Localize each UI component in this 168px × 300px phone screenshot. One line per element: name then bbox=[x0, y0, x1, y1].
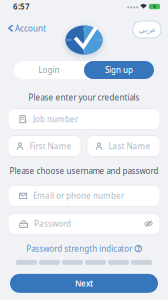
staticText: ? bbox=[137, 244, 140, 253]
staticText: Sign up bbox=[105, 65, 133, 75]
staticText: First Name bbox=[29, 141, 71, 151]
staticText: Job number bbox=[33, 114, 78, 124]
staticText: Please choose username and password bbox=[9, 166, 158, 176]
staticText: Last Name bbox=[108, 141, 150, 151]
button[interactable]: Arabic language bbox=[133, 14, 168, 38]
staticText: Account bbox=[15, 23, 46, 34]
staticText: Password bbox=[34, 218, 71, 229]
button[interactable]: Password strength help bbox=[135, 245, 142, 252]
button[interactable]: Next bbox=[10, 274, 158, 293]
staticText: 6:57 bbox=[13, 1, 30, 12]
staticText: Next bbox=[75, 278, 93, 289]
staticText: Please enter your credentials bbox=[28, 92, 139, 103]
button[interactable]: Sign up bbox=[84, 61, 154, 79]
button[interactable]: Login bbox=[14, 61, 84, 79]
staticText: Email or phone number bbox=[33, 190, 124, 201]
staticText: Login bbox=[38, 65, 59, 75]
staticText: عربي bbox=[138, 25, 156, 34]
button[interactable]: Show password bbox=[144, 220, 160, 227]
button[interactable]: Account bbox=[0, 14, 46, 34]
staticText: Password strength indicator bbox=[26, 243, 132, 254]
